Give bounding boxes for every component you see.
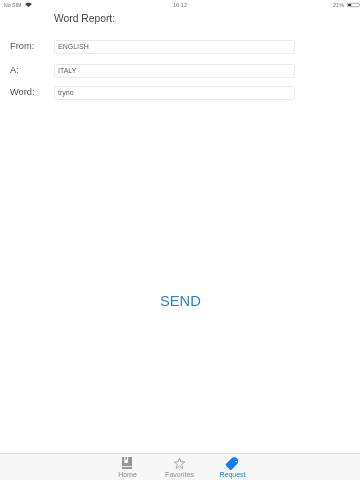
staticText: Request [219, 471, 246, 479]
staticText: Home [118, 471, 137, 479]
staticText: 16:12 [173, 2, 187, 8]
staticText: A: [10, 65, 19, 75]
button[interactable]: SEND [154, 289, 207, 313]
button[interactable]: Home [102, 454, 152, 480]
other: Home [122, 457, 132, 469]
button[interactable]: ITALY [54, 64, 295, 78]
staticText: Favorites [165, 471, 194, 479]
staticText: Word: [10, 87, 35, 97]
staticText: SEND [160, 293, 201, 309]
staticText: Word Report: [54, 13, 116, 25]
button[interactable]: Favorites [154, 454, 204, 480]
button[interactable]: ENGLISH [54, 40, 295, 54]
staticText: No SIM [4, 2, 22, 8]
staticText: ENGLISH [58, 43, 89, 51]
button[interactable]: tryno [54, 86, 295, 100]
staticText: ITALY [58, 67, 77, 75]
staticText: 21% [333, 2, 345, 8]
other: Favorites [174, 457, 185, 469]
other: Request [226, 457, 239, 469]
staticText: From: [10, 41, 35, 51]
button[interactable]: Request [207, 454, 257, 480]
staticText: tryno [58, 89, 74, 97]
